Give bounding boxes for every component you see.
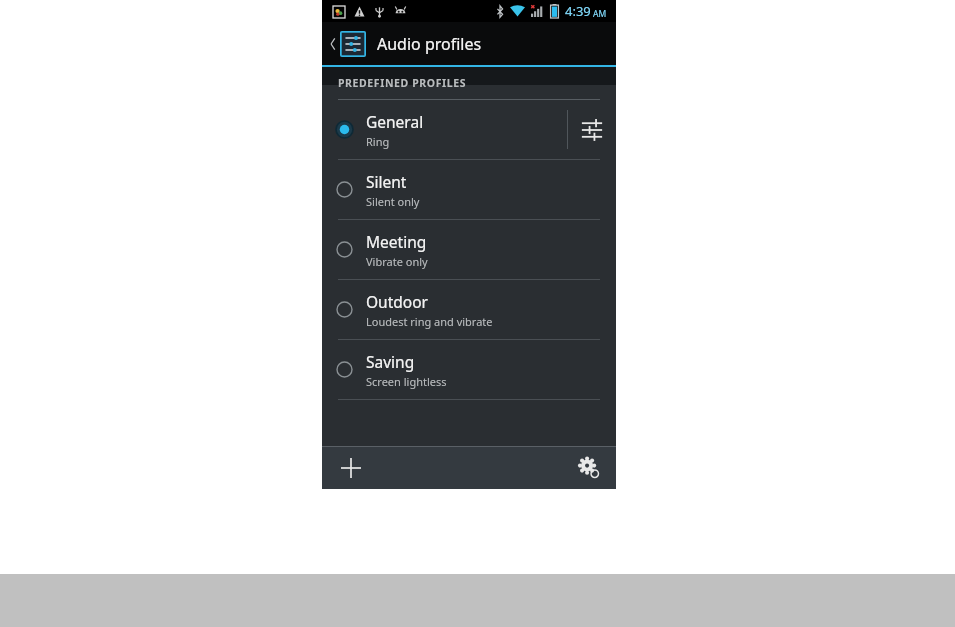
button[interactable]: Navigate up — [326, 22, 369, 65]
button[interactable]: Edit profile settings — [568, 100, 616, 159]
button[interactable]: Meeting — [322, 220, 616, 279]
button[interactable]: Settings — [562, 447, 616, 489]
button[interactable]: Saving — [322, 340, 616, 399]
staticText: Silent only — [366, 194, 420, 209]
staticText: Ring — [366, 134, 390, 149]
staticText: Meeting — [366, 231, 427, 252]
button[interactable]: Outdoor — [322, 280, 616, 339]
staticText: AM — [593, 8, 607, 20]
staticText: General — [366, 111, 424, 132]
staticText: Audio profiles — [377, 33, 482, 55]
staticText: Screen lightless — [366, 374, 447, 389]
staticText: Outdoor — [366, 291, 428, 312]
button[interactable]: Add profile — [322, 447, 380, 489]
button[interactable]: General — [322, 100, 616, 159]
staticText: Saving — [366, 351, 415, 372]
staticText: Vibrate only — [366, 254, 428, 269]
button[interactable]: Silent — [322, 160, 616, 219]
staticText: Silent — [366, 171, 407, 192]
staticText: PREDEFINED PROFILES — [338, 76, 467, 90]
staticText: Loudest ring and vibrate — [366, 314, 493, 329]
staticText: 4:39 — [565, 2, 591, 20]
